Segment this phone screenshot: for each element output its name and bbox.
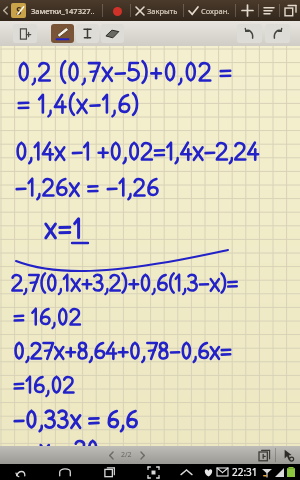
staticText: 22:31 [232,465,258,479]
button[interactable]: Redo [265,24,290,43]
button[interactable]: Back [0,0,11,21]
button[interactable]: Next page [132,446,152,464]
staticText: Закрыть [147,6,178,16]
button[interactable]: Pen [51,24,74,43]
button[interactable]: Expand [173,464,199,480]
button[interactable]: Сохран. [184,0,235,21]
button[interactable]: Text [76,24,99,43]
staticText: Сохран. [201,6,230,16]
button[interactable]: Add [236,0,258,21]
button[interactable]: New page [13,24,37,43]
button[interactable]: Home [50,464,80,480]
button[interactable]: Back [6,464,36,480]
button[interactable]: Eraser [101,24,124,43]
button[interactable]: Pointer [276,446,300,464]
button[interactable]: Previous page [101,446,121,464]
button[interactable]: Recents [94,464,124,480]
staticText: S [16,4,22,18]
button[interactable]: Windows [280,0,300,21]
button[interactable]: Заметки_147327.. [31,6,95,16]
button[interactable]: Menu [259,0,279,21]
button[interactable]: Capture [138,464,168,480]
button[interactable]: App icon [11,3,26,18]
button[interactable]: Record [110,4,124,18]
button[interactable]: Add page [253,446,275,464]
button[interactable]: Закрыть [131,0,183,21]
button[interactable]: Undo [237,24,262,43]
staticText: 2/2 [121,450,132,460]
